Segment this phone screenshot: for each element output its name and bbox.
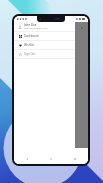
- staticText: Sign Out: [24, 52, 36, 56]
- staticText: johndoe@example.com: [24, 27, 48, 30]
- button[interactable]: Cart: [80, 26, 84, 30]
- staticText: Wishlist: [24, 43, 35, 47]
- button[interactable]: Recents: [71, 155, 79, 163]
- button[interactable]: Wishlist: [14, 41, 75, 49]
- button[interactable]: Dashboard: [14, 32, 75, 40]
- button[interactable]: Home: [47, 155, 55, 163]
- staticText: John Doe: [24, 23, 37, 27]
- staticText: Dashboard: [24, 34, 39, 38]
- button[interactable]: Back: [23, 155, 31, 163]
- button[interactable]: Sign Out: [14, 50, 75, 58]
- button[interactable]: John Doe: [14, 22, 75, 31]
